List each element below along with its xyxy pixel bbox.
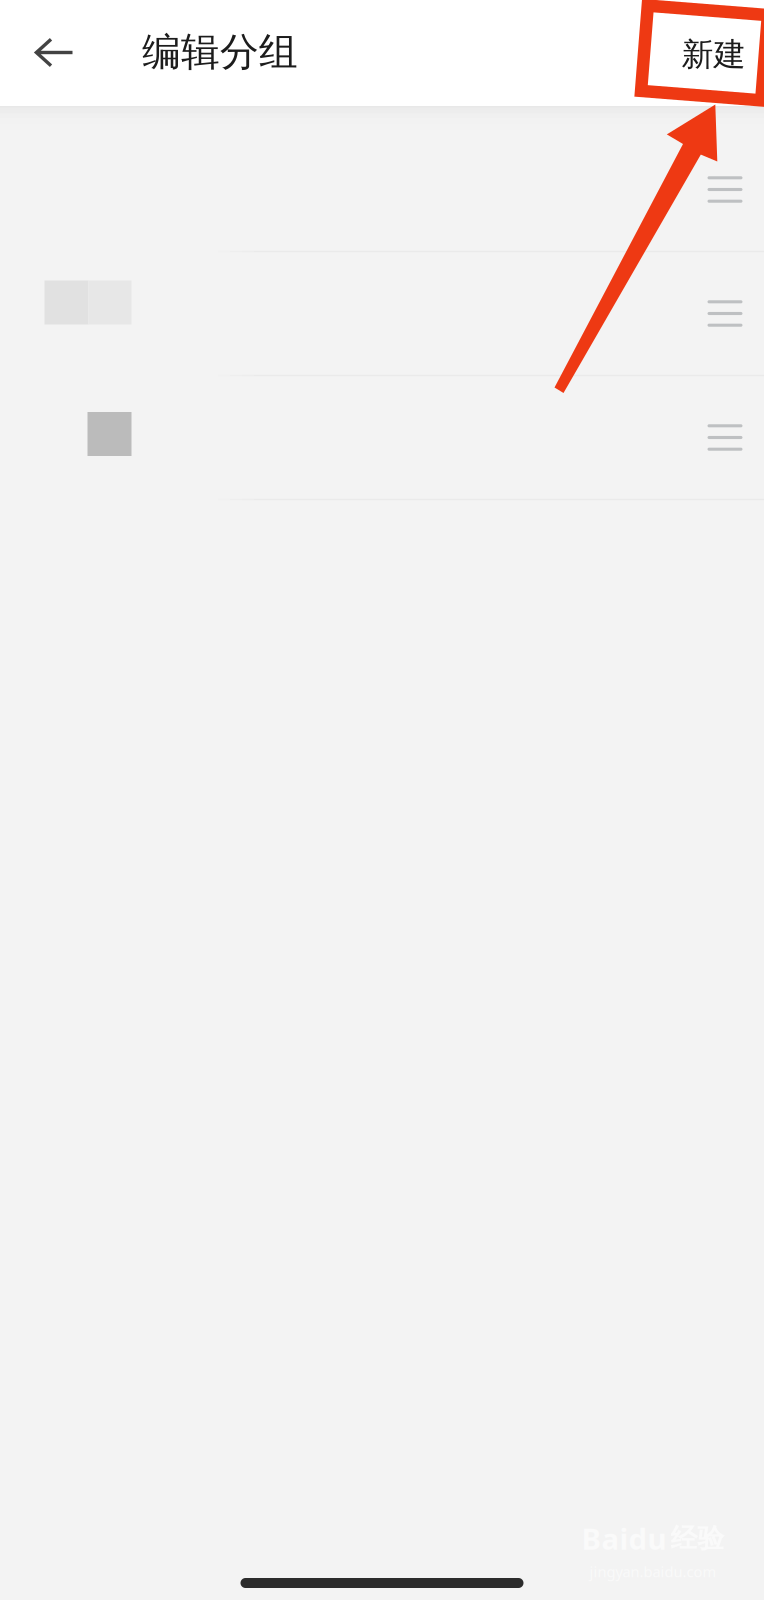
button[interactable]: 新建 bbox=[666, 22, 760, 86]
button[interactable] bbox=[0, 251, 764, 375]
button[interactable] bbox=[0, 127, 764, 251]
button[interactable]: 拖动排序 bbox=[689, 401, 761, 473]
button[interactable] bbox=[0, 375, 764, 499]
button[interactable]: 返回 bbox=[2, 0, 106, 105]
button[interactable]: 拖动排序 bbox=[689, 277, 761, 349]
staticText: 经验 bbox=[670, 1522, 724, 1555]
staticText: 新建 bbox=[681, 35, 745, 74]
staticText: 编辑分组 bbox=[142, 28, 298, 76]
button[interactable]: 拖动排序 bbox=[689, 153, 761, 225]
